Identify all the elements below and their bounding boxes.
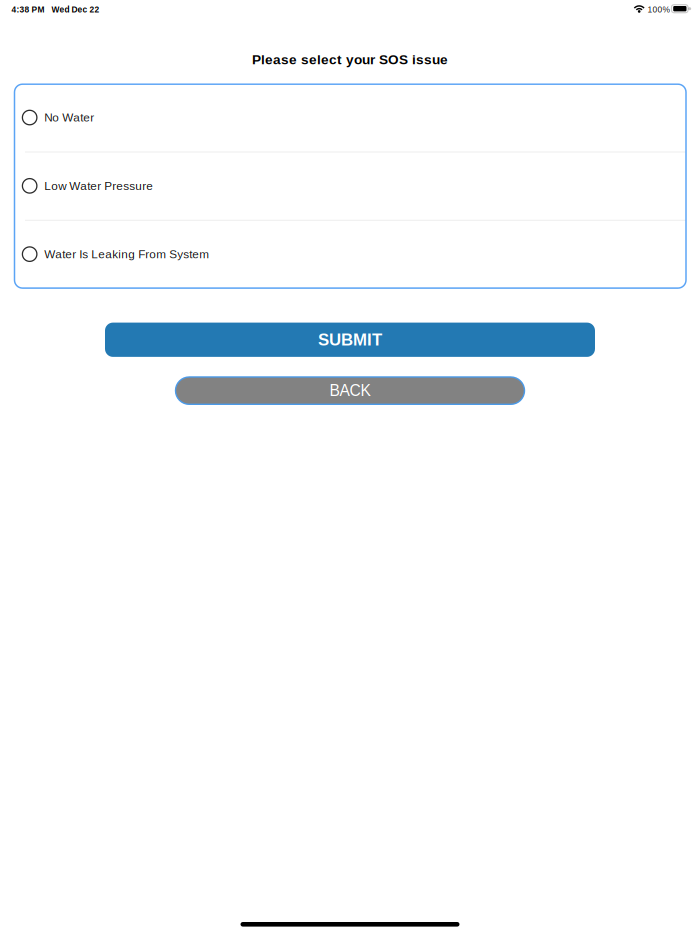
button[interactable]: BACK bbox=[175, 376, 525, 405]
staticText: Low Water Pressure bbox=[44, 179, 153, 192]
button[interactable]: Water Is Leaking From System bbox=[14, 221, 686, 288]
staticText: BACK bbox=[329, 382, 370, 399]
staticText: 100% bbox=[647, 5, 669, 14]
staticText: Wed Dec 22 bbox=[51, 5, 99, 14]
staticText: Water Is Leaking From System bbox=[44, 248, 209, 261]
staticText: No Water bbox=[44, 111, 94, 124]
button[interactable]: No Water bbox=[14, 84, 686, 151]
staticText: SUBMIT bbox=[318, 330, 382, 349]
staticText: 4:38 PM bbox=[11, 5, 44, 14]
staticText: Please select your SOS issue bbox=[252, 52, 448, 67]
button[interactable]: SUBMIT bbox=[105, 323, 595, 357]
button[interactable]: Low Water Pressure bbox=[14, 152, 686, 220]
